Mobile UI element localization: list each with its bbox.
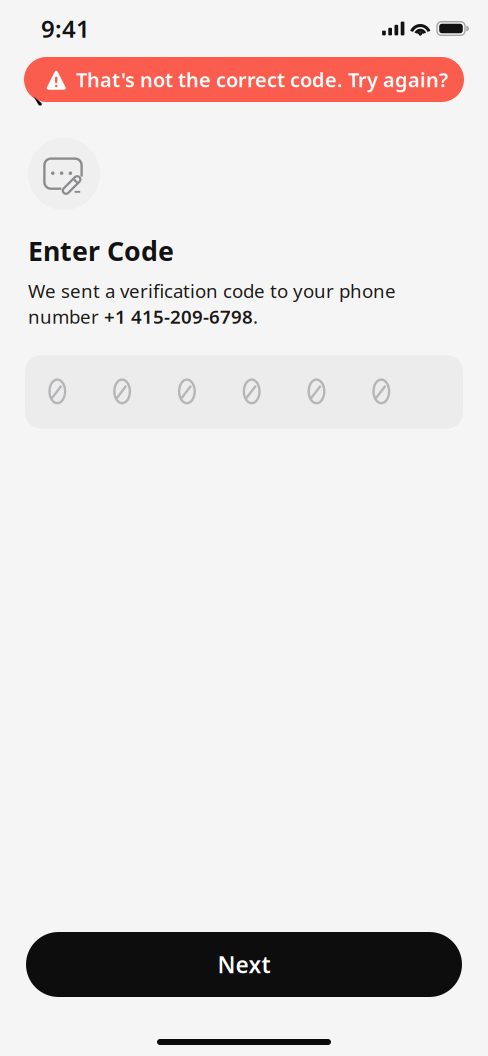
- staticText: 9:41: [41, 13, 90, 44]
- staticText: We sent a verification code to your phon…: [28, 278, 396, 329]
- button[interactable]: That's not the correct code. Try again?: [24, 57, 464, 102]
- button[interactable]: Next: [0, 932, 488, 997]
- staticText: Enter Code: [28, 233, 174, 268]
- staticText: That's not the correct code. Try again?: [76, 66, 448, 93]
- staticText: Next: [217, 949, 270, 979]
- button[interactable]: Verification code: [25, 355, 463, 429]
